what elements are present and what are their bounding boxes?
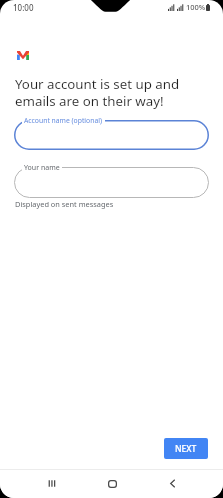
button[interactable]: Your name — [14, 167, 209, 198]
staticText: Your name — [24, 163, 60, 173]
staticText: 100% — [186, 2, 206, 12]
staticText: 10:00 — [13, 2, 34, 13]
button[interactable]: Account name (optional) — [14, 120, 209, 150]
staticText: Displayed on sent messages — [15, 199, 114, 209]
button[interactable]: NEXT — [164, 438, 208, 459]
staticText: NEXT — [175, 443, 197, 455]
staticText: Your account is set up and emails are on… — [15, 75, 180, 110]
staticText: Account name (optional) — [24, 116, 103, 125]
button[interactable]: Back — [142, 469, 202, 498]
button[interactable]: Recents — [21, 469, 82, 498]
button[interactable]: Home — [82, 469, 142, 498]
